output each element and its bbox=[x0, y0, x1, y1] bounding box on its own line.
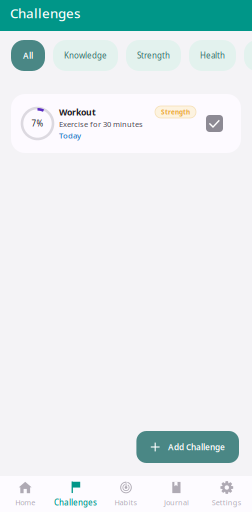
staticText: Challenges bbox=[54, 497, 97, 508]
button[interactable]: Journal bbox=[151, 480, 202, 507]
button[interactable]: Add Challenge bbox=[136, 431, 239, 463]
button[interactable]: Knowledge bbox=[53, 40, 118, 71]
staticText: Habits bbox=[114, 497, 137, 507]
button[interactable]: Challenges bbox=[50, 480, 101, 508]
button[interactable]: All bbox=[11, 40, 45, 71]
button[interactable]: Mind bbox=[244, 40, 252, 71]
staticText: Add Challenge bbox=[168, 441, 225, 453]
staticText: Strength bbox=[137, 50, 170, 61]
staticText: Health bbox=[200, 50, 225, 61]
button[interactable]: Health bbox=[189, 40, 236, 71]
staticText: All bbox=[23, 50, 33, 61]
staticText: Strength bbox=[161, 108, 190, 116]
staticText: Journal bbox=[164, 497, 189, 507]
button[interactable]: Home bbox=[0, 480, 50, 507]
staticText: 7% bbox=[31, 118, 43, 129]
staticText: Knowledge bbox=[64, 50, 107, 61]
staticText: Challenges bbox=[10, 4, 80, 22]
staticText: Workout bbox=[59, 106, 96, 118]
staticText: Today bbox=[59, 130, 81, 141]
button[interactable]: Strength bbox=[126, 40, 181, 71]
staticText: Settings bbox=[212, 497, 242, 507]
button[interactable]: Settings bbox=[202, 480, 252, 507]
staticText: Exercise for 30 minutes bbox=[59, 119, 143, 129]
button[interactable]: Habits bbox=[101, 480, 151, 507]
staticText: Home bbox=[15, 497, 35, 507]
